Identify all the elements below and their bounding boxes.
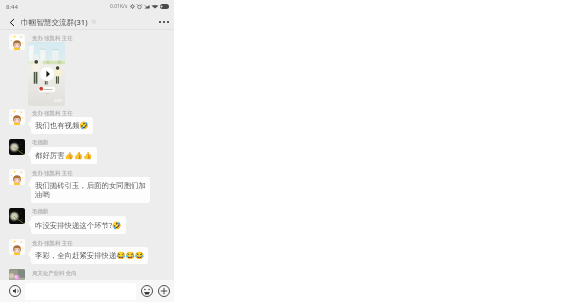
staticText: 党办 张凯利 主任: [32, 109, 73, 116]
button[interactable]: Play video: [28, 42, 65, 106]
button[interactable]: 我们也有视频🤣: [31, 117, 93, 134]
button[interactable]: More options: [157, 284, 171, 298]
staticText: 党办 张凯利 主任: [32, 239, 73, 246]
button[interactable]: 咋没安排快递这个环节?🤣: [31, 216, 126, 234]
staticText: 8:44: [6, 3, 18, 11]
staticText: 巾帼智慧交流群(31): [21, 17, 88, 27]
staticText: 党办 张凯利 主任: [32, 169, 73, 176]
staticText: 毛德新: [32, 208, 49, 215]
button[interactable]: Emoji: [140, 284, 154, 298]
button[interactable]: Back: [5, 15, 19, 29]
button[interactable]: 我们抛砖引玉，后面的女同胞们加油哟: [31, 177, 150, 203]
staticText: 毛德新: [32, 139, 49, 146]
button[interactable]: 李彩，全向赶紧安排快递😂😂😂: [31, 247, 148, 264]
staticText: 0:06: [54, 98, 63, 104]
button[interactable]: Voice input: [8, 284, 22, 298]
staticText: 咋没安排快递这个环节?🤣: [35, 220, 122, 230]
button[interactable]: 都好厉害👍👍👍: [31, 147, 97, 164]
staticText: 局文化产业科 全向: [32, 269, 77, 276]
staticText: 0.01K/s: [110, 3, 128, 10]
staticText: 李彩，全向赶紧安排快递😂😂😂: [35, 251, 144, 260]
staticText: 党办 张凯利 主任: [32, 34, 73, 41]
staticText: 都好厉害👍👍👍: [35, 151, 93, 160]
button[interactable]: More: [157, 15, 171, 29]
staticText: 我们抛砖引玉，后面的女同胞们加油哟: [35, 181, 146, 199]
staticText: 我们也有视频🤣: [35, 121, 89, 130]
